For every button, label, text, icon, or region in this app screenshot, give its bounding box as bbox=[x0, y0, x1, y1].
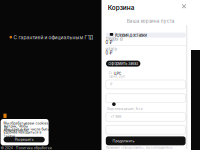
staticText: Цена, руб bbox=[109, 75, 125, 78]
staticText: 0 ₽ bbox=[105, 51, 112, 56]
staticText: +7 999 bbox=[110, 115, 121, 119]
staticText: Итого bbox=[105, 47, 116, 52]
staticText: ЦРС bbox=[114, 71, 122, 76]
staticText: 0 ₽ bbox=[105, 40, 112, 45]
staticText: Разрешить bbox=[15, 137, 34, 142]
staticText: Нажимая «Продолжить», вы соглашаетесь bbox=[106, 146, 173, 149]
staticText: С гарантией и официальным ГТД bbox=[13, 35, 93, 40]
staticText: ₽ bbox=[110, 82, 112, 86]
button[interactable]: Закрыть bbox=[179, 2, 188, 11]
staticText: Корзина bbox=[108, 4, 135, 11]
staticText: Условия доставки bbox=[114, 33, 146, 38]
button[interactable]: Продолжить bbox=[106, 136, 186, 145]
staticText: Ваша корзина пуста bbox=[127, 18, 175, 24]
staticText: удобнее находиться в сайтом. bbox=[3, 130, 41, 138]
staticText: Мы обрабатываем cookies, Са bbox=[3, 121, 49, 129]
button[interactable]: Оформить заказ bbox=[106, 61, 140, 67]
staticText: Товары (0) bbox=[105, 37, 123, 41]
staticText: наш сайт, в том числе быть bbox=[3, 127, 49, 131]
staticText: метрик. Чтобы использовать bbox=[3, 124, 27, 132]
staticText: Оформить заказ bbox=[108, 61, 138, 66]
staticText: Подтверждение, 6-ти bbox=[107, 107, 143, 111]
staticText: © 2024 · Политика обработки bbox=[1, 146, 52, 150]
button[interactable]: Разрешить bbox=[4, 137, 45, 142]
staticText: Продолжить bbox=[112, 139, 134, 143]
